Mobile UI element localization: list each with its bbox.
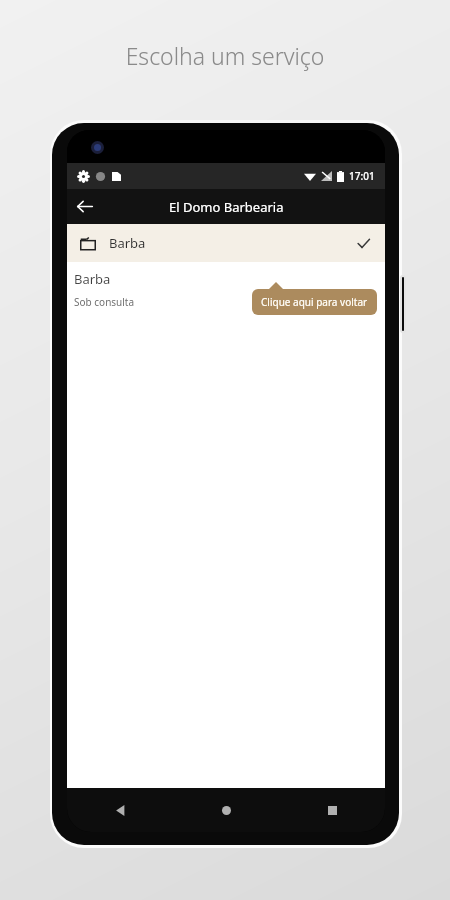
staticText: Sob consulta xyxy=(74,295,135,309)
staticText: Barba xyxy=(74,270,111,288)
button[interactable]: Barba xyxy=(67,262,385,317)
button[interactable]: Voltar xyxy=(67,189,102,224)
staticText: Barba xyxy=(109,234,146,252)
staticText: 17:01 xyxy=(349,169,375,183)
staticText: 1h xyxy=(361,295,373,309)
button[interactable]: Clique aqui para voltar xyxy=(252,289,377,315)
button[interactable]: Barba xyxy=(67,224,385,262)
button[interactable]: Início xyxy=(173,788,279,832)
button[interactable]: Voltar xyxy=(67,788,173,832)
staticText: Escolha um serviço xyxy=(0,40,450,71)
staticText: El Domo Barbearia xyxy=(169,198,284,216)
button[interactable]: Recentes xyxy=(279,788,385,832)
staticText: Clique aqui para voltar xyxy=(261,295,368,309)
